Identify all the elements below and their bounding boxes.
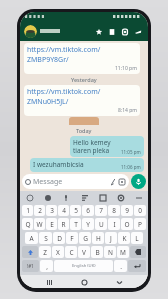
- button[interactable]: https://vm.tiktok.com/ZMBP9Y8Gr/: [24, 43, 140, 74]
- button[interactable]: B: [91, 246, 103, 258]
- button[interactable]: M: [117, 246, 129, 258]
- button[interactable]: Y: [82, 218, 94, 230]
- button[interactable]: Message: [22, 174, 129, 189]
- button[interactable]: Backspace: [130, 246, 146, 258]
- staticText: 3: [50, 206, 54, 215]
- staticText: .: [120, 262, 122, 271]
- button[interactable]: E: [46, 218, 57, 230]
- staticText: !#1: [27, 263, 34, 269]
- staticText: J: [110, 234, 112, 243]
- button[interactable]: 6: [82, 205, 94, 216]
- button[interactable]: S: [39, 232, 52, 244]
- staticText: G: [83, 234, 88, 243]
- button[interactable]: F: [66, 232, 78, 244]
- button[interactable]: Clipboard: [97, 192, 108, 203]
- button[interactable]: [40, 29, 92, 33]
- staticText: U: [99, 220, 104, 229]
- staticText: H: [96, 234, 101, 243]
- button[interactable]: X: [52, 246, 64, 258]
- button[interactable]: A: [25, 232, 38, 244]
- button[interactable]: Recents: [43, 276, 55, 288]
- button[interactable]: Z: [39, 246, 51, 258]
- button[interactable]: T: [70, 218, 81, 230]
- button[interactable]: V: [78, 246, 90, 258]
- button[interactable]: 3: [46, 205, 57, 216]
- button[interactable]: Emoji: [24, 192, 35, 203]
- button[interactable]: 9: [121, 205, 133, 216]
- staticText: ,: [46, 262, 48, 271]
- button[interactable]: 7: [95, 205, 107, 216]
- staticText: I wezuhambicsia sjkakligggod akjbohunjpi…: [33, 160, 119, 170]
- button[interactable]: Attach: [109, 178, 117, 186]
- button[interactable]: P: [134, 218, 146, 230]
- button[interactable]: 5: [70, 205, 81, 216]
- button[interactable]: More: [133, 192, 144, 203]
- button[interactable]: Voice message: [131, 174, 146, 189]
- staticText: https://vm.tiktok.com/ZMNu0H5JL/: [27, 87, 137, 107]
- button[interactable]: Translate: [79, 192, 90, 203]
- button[interactable]: Home: [78, 276, 90, 288]
- button[interactable]: N: [104, 246, 116, 258]
- staticText: E: [50, 220, 54, 229]
- button[interactable]: Space: [54, 260, 113, 272]
- button[interactable]: Settings: [115, 192, 126, 203]
- button[interactable]: R: [58, 218, 69, 230]
- button[interactable]: https://vm.tiktok.com/ZMNu0H5JL/: [24, 85, 140, 116]
- button[interactable]: Enter: [128, 260, 146, 272]
- button[interactable]: D: [53, 232, 65, 244]
- button[interactable]: C: [65, 246, 77, 258]
- button[interactable]: J: [105, 232, 117, 244]
- button[interactable]: Back: [113, 276, 125, 288]
- staticText: S: [44, 234, 48, 243]
- staticText: F: [70, 234, 74, 243]
- staticText: 7: [99, 206, 103, 215]
- button[interactable]: Sticker: [42, 192, 53, 203]
- staticText: Q: [25, 220, 31, 229]
- staticText: 4: [62, 206, 66, 215]
- staticText: Today: [76, 127, 92, 134]
- button[interactable]: Lock: [118, 25, 131, 38]
- button[interactable]: H: [92, 232, 104, 244]
- button[interactable]: 8: [108, 205, 120, 216]
- button[interactable]: Star: [92, 25, 105, 38]
- staticText: 11:06 pm: [121, 164, 141, 170]
- button[interactable]: O: [121, 218, 133, 230]
- staticText: Z: [43, 248, 47, 257]
- button[interactable]: Camera: [118, 178, 126, 186]
- staticText: B: [95, 248, 100, 257]
- button[interactable]: U: [95, 218, 107, 230]
- button[interactable]: Shift: [22, 246, 38, 258]
- button[interactable]: Call: [131, 25, 144, 38]
- button[interactable]: Hello kemey tiaren pleka: [70, 136, 144, 157]
- button[interactable]: 2: [34, 205, 45, 216]
- staticText: 1: [26, 206, 30, 215]
- button[interactable]: G: [79, 232, 91, 244]
- button[interactable]: 1: [22, 205, 33, 216]
- staticText: English (UK): [72, 263, 96, 269]
- button[interactable]: I wezuhambicsia sjkakligggod akjbohunjpi…: [30, 158, 144, 172]
- button[interactable]: W: [34, 218, 45, 230]
- button[interactable]: ,: [40, 260, 53, 272]
- staticText: T: [74, 220, 78, 229]
- button[interactable]: K: [118, 232, 130, 244]
- staticText: Hello kemey tiaren pleka: [73, 138, 119, 155]
- staticText: O: [124, 220, 130, 229]
- staticText: C: [69, 248, 74, 257]
- staticText: P: [138, 220, 142, 229]
- staticText: Y: [86, 220, 90, 229]
- staticText: 8: [112, 206, 116, 215]
- button[interactable]: 0: [134, 205, 146, 216]
- button[interactable]: .: [114, 260, 127, 272]
- button[interactable]: 4: [58, 205, 69, 216]
- button[interactable]: I: [108, 218, 120, 230]
- button[interactable]: Q: [22, 218, 33, 230]
- button[interactable]: Voice input: [60, 192, 71, 203]
- button[interactable]: L: [131, 232, 143, 244]
- staticText: 9: [125, 206, 129, 215]
- button[interactable]: Photo: [69, 117, 99, 125]
- staticText: Message: [33, 177, 109, 187]
- button[interactable]: Contact avatar: [24, 25, 37, 38]
- staticText: I: [113, 220, 116, 229]
- button[interactable]: Symbols: [22, 260, 39, 272]
- button[interactable]: Gallery: [105, 25, 118, 38]
